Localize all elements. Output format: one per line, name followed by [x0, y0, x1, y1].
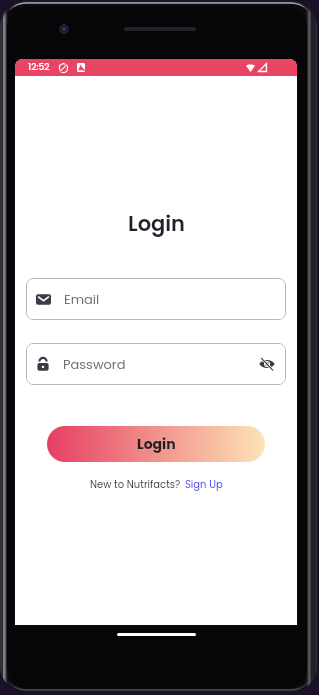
button[interactable]: Sign Up [185, 477, 223, 491]
button[interactable]: Password [26, 343, 286, 385]
staticText: New to Nutrifacts? [90, 477, 181, 491]
button[interactable]: Login [47, 426, 265, 462]
staticText: Email [64, 290, 100, 308]
button[interactable]: Email [26, 278, 286, 320]
staticText: Sign Up [185, 477, 223, 491]
staticText: 12:52 [28, 61, 50, 74]
other: Show password [259, 356, 275, 372]
staticText: Password [63, 355, 126, 373]
staticText: Login [137, 434, 176, 454]
staticText: Login [128, 209, 185, 238]
